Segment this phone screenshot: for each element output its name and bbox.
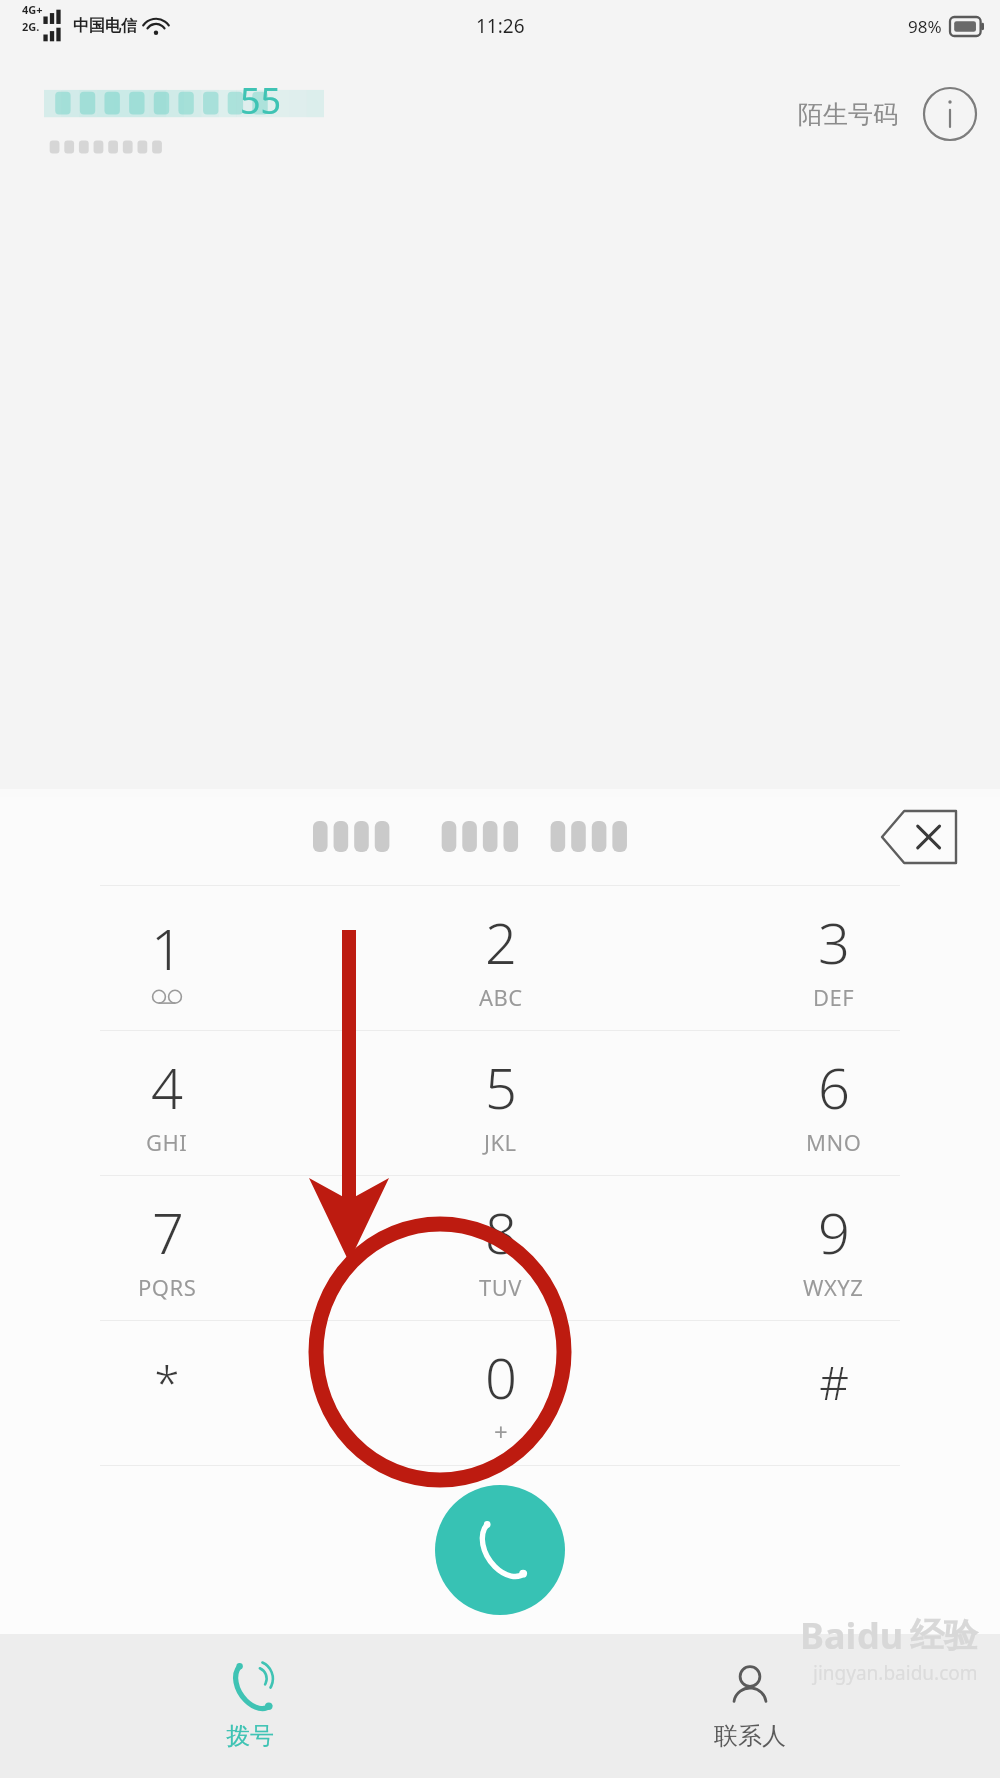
staticText: 3 [818, 904, 850, 980]
button[interactable]: 0 [334, 1321, 667, 1465]
button[interactable]: Backspace [876, 804, 962, 870]
button[interactable]: 55 [0, 52, 1000, 188]
button[interactable]: Info [922, 86, 978, 142]
staticText: ABC [479, 982, 523, 1012]
button[interactable]: 3 [667, 886, 1000, 1030]
button[interactable]: 拨号 [0, 1634, 500, 1778]
button[interactable]: 9 [667, 1176, 1000, 1320]
staticText: PQRS [138, 1272, 197, 1302]
staticText: du [857, 1611, 904, 1660]
button[interactable]: 5 [334, 1031, 667, 1175]
button[interactable]: 8 [334, 1176, 667, 1320]
staticText: TUV [479, 1272, 523, 1302]
staticText: jingyan.baidu.com [813, 1660, 978, 1686]
staticText: JKL [484, 1127, 517, 1157]
staticText: 9 [818, 1194, 850, 1270]
staticText: 2 [485, 904, 517, 980]
staticText: 经验 [910, 1614, 978, 1657]
staticText: + [494, 1415, 509, 1448]
staticText: 拨号 [226, 1721, 274, 1751]
staticText: 98% [908, 15, 942, 38]
button[interactable]: 4 [0, 1031, 334, 1175]
staticText: Bai [800, 1611, 857, 1660]
staticText: 中国电信 [73, 16, 137, 36]
staticText: # [819, 1351, 849, 1414]
staticText: 0 [485, 1339, 517, 1415]
staticText: WXYZ [803, 1272, 864, 1302]
button[interactable]: 2 [334, 886, 667, 1030]
staticText: 1 [151, 910, 183, 986]
button[interactable]: 7 [0, 1176, 334, 1320]
staticText: * [154, 1351, 180, 1414]
staticText: GHI [146, 1127, 188, 1157]
staticText: MNO [806, 1127, 862, 1157]
button[interactable]: * [0, 1321, 334, 1465]
staticText: 2G. [22, 19, 40, 34]
staticText: 陌生号码 [798, 99, 898, 130]
staticText: 4 [151, 1049, 183, 1125]
staticText: DEF [813, 982, 855, 1012]
staticText: 7 [152, 1194, 184, 1270]
staticText: 8 [485, 1194, 517, 1270]
staticText: 6 [818, 1049, 850, 1125]
button[interactable]: 联系人 [500, 1634, 1000, 1778]
button[interactable]: # [667, 1321, 1000, 1465]
staticText: 5 [485, 1049, 517, 1125]
button[interactable]: 1 [0, 886, 334, 1030]
button[interactable]: Call [435, 1485, 565, 1615]
staticText: 4G+ [22, 2, 43, 17]
staticText: 11:26 [476, 13, 525, 39]
button[interactable]: 6 [667, 1031, 1000, 1175]
staticText: 联系人 [714, 1721, 786, 1751]
staticText: 55 [240, 76, 282, 125]
